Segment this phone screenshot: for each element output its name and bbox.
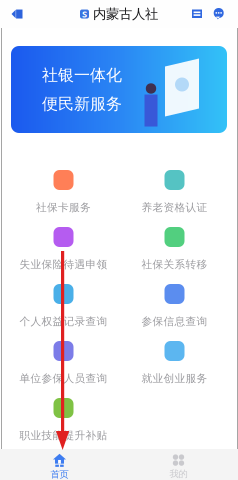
staticText: 养老资格认证 bbox=[141, 201, 207, 214]
button[interactable]: 返回 bbox=[0, 0, 28, 28]
button[interactable]: 个人权益记录查询 bbox=[8, 275, 119, 332]
staticText: 个人权益记录查询 bbox=[19, 315, 107, 328]
button[interactable]: 社保卡服务 bbox=[8, 161, 119, 218]
staticText: S bbox=[82, 8, 87, 20]
button[interactable]: 单位参保人员查询 bbox=[8, 332, 119, 389]
button[interactable]: 失业保险待遇申领 bbox=[8, 218, 119, 275]
staticText: 失业保险待遇申领 bbox=[19, 258, 107, 271]
button[interactable]: 就业创业服务 bbox=[119, 332, 230, 389]
staticText: 单位参保人员查询 bbox=[19, 372, 107, 385]
button[interactable]: 参保信息查询 bbox=[119, 275, 230, 332]
staticText: 便民新服务 bbox=[42, 94, 122, 114]
staticText: 首页 bbox=[50, 469, 68, 480]
staticText: 内蒙古人社 bbox=[93, 6, 158, 22]
staticText: 职业技能提升补贴 bbox=[19, 429, 107, 442]
staticText: 参保信息查询 bbox=[141, 315, 207, 328]
button[interactable]: 养老资格认证 bbox=[119, 161, 230, 218]
button[interactable]: 首页 bbox=[0, 449, 119, 480]
staticText: 社银一体化 bbox=[42, 65, 122, 85]
staticText: 社保关系转移 bbox=[141, 258, 207, 271]
staticText: 社保卡服务 bbox=[36, 201, 91, 214]
staticText: 我的 bbox=[169, 468, 187, 480]
button[interactable]: 电子社保卡 bbox=[186, 0, 208, 28]
button[interactable]: 在线客服 bbox=[208, 0, 230, 28]
button[interactable]: 职业技能提升补贴 bbox=[8, 389, 119, 446]
button[interactable]: 社保关系转移 bbox=[119, 218, 230, 275]
button[interactable]: 我的 bbox=[119, 449, 238, 480]
button[interactable]: 社银一体化 bbox=[11, 46, 227, 133]
staticText: 就业创业服务 bbox=[141, 372, 207, 385]
